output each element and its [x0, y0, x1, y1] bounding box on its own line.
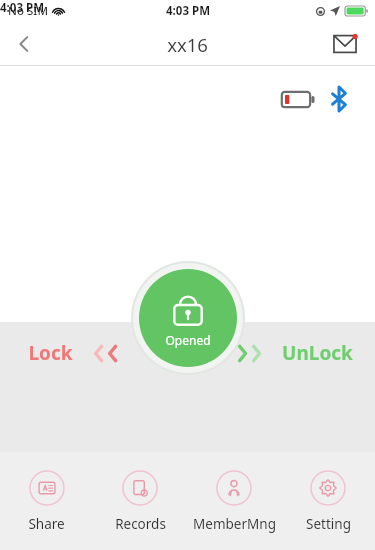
staticText: 4:03 PM [0, 0, 44, 16]
button[interactable]: Share [0, 452, 93, 550]
staticText: xx16 [167, 32, 208, 57]
staticText: No SIM [8, 3, 48, 19]
staticText: Opened [165, 332, 211, 348]
button[interactable]: MemberMng [187, 452, 281, 550]
staticText: Records [115, 515, 166, 533]
button[interactable]: Records [93, 452, 187, 550]
button[interactable]: Back [0, 22, 48, 66]
button[interactable]: Setting [281, 452, 375, 550]
button[interactable]: UnLock [282, 340, 353, 366]
staticText: MemberMng [193, 515, 276, 533]
button[interactable]: Messages [323, 22, 367, 66]
button[interactable]: Slide to unlock [233, 345, 266, 362]
staticText: UnLock [282, 340, 353, 366]
button[interactable]: Lock toggle, Opened [139, 269, 237, 367]
staticText: Share [28, 515, 65, 533]
staticText: Lock [28, 340, 73, 366]
staticText: Setting [306, 515, 351, 533]
button[interactable]: Lock [28, 340, 73, 366]
staticText: 4:03 PM [166, 3, 210, 19]
button[interactable]: Slide to lock [89, 345, 122, 362]
